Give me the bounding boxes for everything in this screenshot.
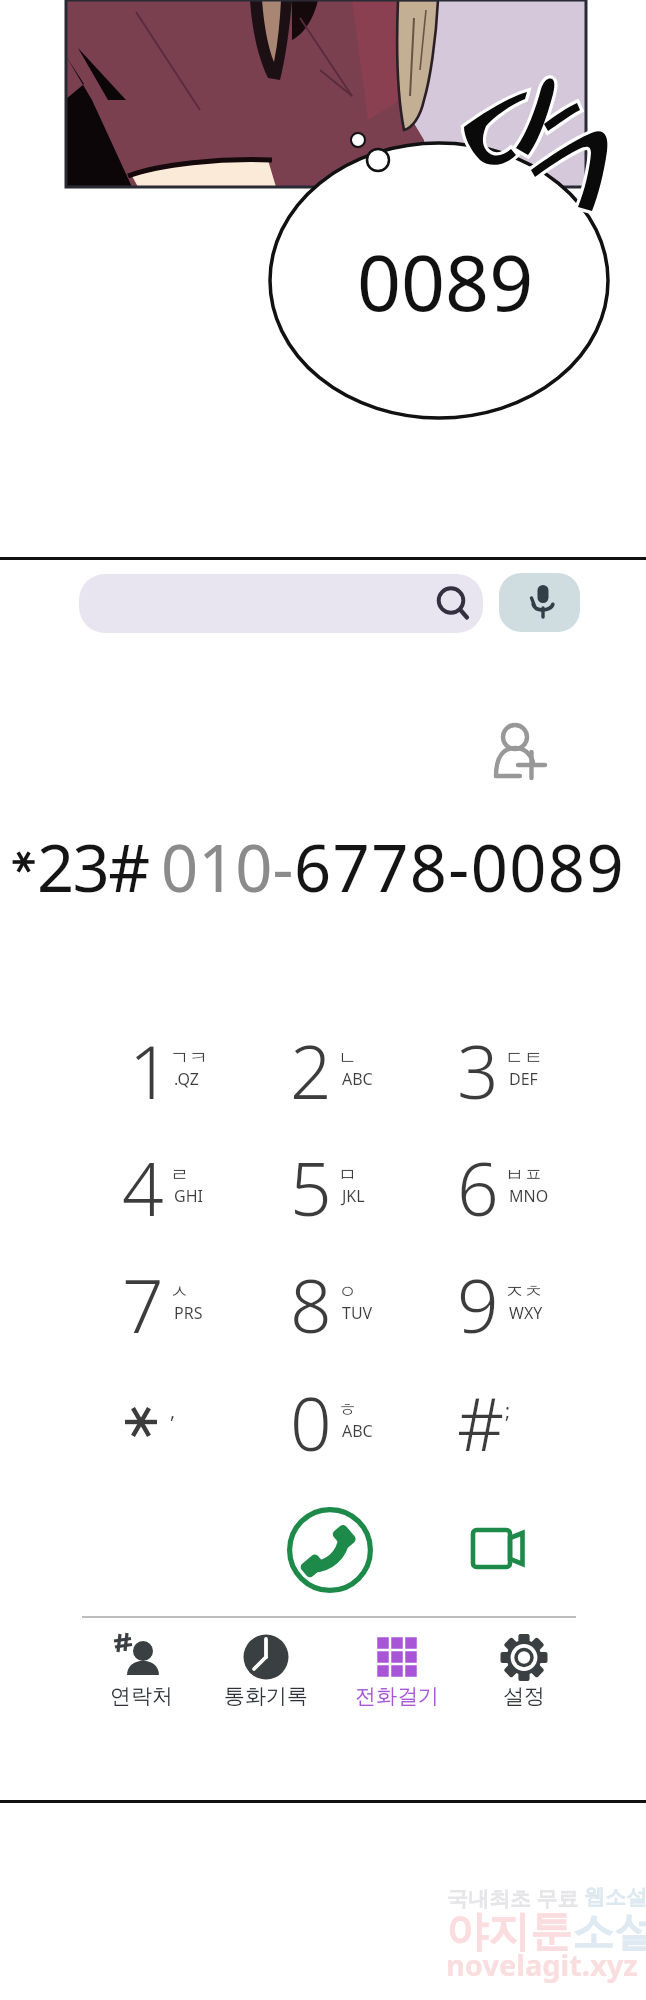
button[interactable]: 2 bbox=[272, 1027, 424, 1131]
button[interactable]: 전화걸기 bbox=[335, 1624, 459, 1720]
button[interactable]: 7 bbox=[104, 1261, 256, 1365]
staticText: 웹소설 bbox=[584, 1884, 646, 1910]
staticText: 연락처 bbox=[110, 1683, 173, 1709]
button[interactable] bbox=[79, 574, 483, 633]
staticText: ㅈㅊ bbox=[505, 1280, 543, 1304]
button[interactable]: 설정 bbox=[462, 1624, 586, 1720]
button[interactable]: 연락처 bbox=[79, 1624, 203, 1720]
button[interactable]: 6 bbox=[439, 1144, 591, 1248]
button[interactable]: 3 bbox=[439, 1027, 591, 1131]
staticText: DEF bbox=[509, 1068, 538, 1090]
staticText: .QZ bbox=[174, 1068, 199, 1090]
staticText: 23# bbox=[37, 823, 149, 912]
staticText: 통화기록 bbox=[224, 1683, 308, 1709]
staticText: MNO bbox=[509, 1185, 549, 1207]
staticText: 야지툰 bbox=[446, 1906, 572, 1959]
staticText: 0089 bbox=[357, 229, 534, 334]
staticText: ㄷㅌ bbox=[505, 1046, 543, 1070]
staticText: ; bbox=[505, 1398, 511, 1424]
staticText: 1 bbox=[129, 1021, 171, 1120]
button[interactable]: Call bbox=[287, 1507, 373, 1593]
button[interactable]: Video call bbox=[465, 1522, 533, 1590]
staticText: 3 bbox=[457, 1021, 499, 1120]
button[interactable]: 통화기록 bbox=[204, 1624, 328, 1720]
staticText: 4 bbox=[122, 1138, 164, 1237]
staticText: ㅅ bbox=[170, 1280, 189, 1304]
staticText: 8 bbox=[290, 1255, 332, 1354]
staticText: 소설 bbox=[572, 1906, 646, 1959]
staticText: 6 bbox=[457, 1138, 499, 1237]
button[interactable]: 0 bbox=[272, 1379, 424, 1483]
staticText: 설정 bbox=[503, 1683, 545, 1709]
button[interactable]: Search bbox=[431, 580, 475, 624]
button[interactable]: 9 bbox=[439, 1261, 591, 1365]
button[interactable]: # bbox=[439, 1379, 591, 1483]
staticText: 전화걸기 bbox=[355, 1683, 439, 1709]
button[interactable]: Add contact bbox=[488, 716, 550, 778]
button[interactable]: 8 bbox=[272, 1261, 424, 1365]
staticText: 2 bbox=[290, 1021, 332, 1120]
button[interactable]: 4 bbox=[104, 1144, 256, 1248]
staticText: ㄱㅋ bbox=[170, 1046, 208, 1070]
staticText: GHI bbox=[174, 1185, 203, 1207]
staticText: 010- bbox=[161, 823, 294, 912]
staticText: WXY bbox=[509, 1302, 543, 1324]
staticText: ABC bbox=[342, 1068, 373, 1090]
staticText: TUV bbox=[342, 1302, 373, 1324]
staticText: 5 bbox=[290, 1138, 332, 1237]
button[interactable]: , bbox=[104, 1379, 256, 1483]
staticText: novelagit.xyz bbox=[446, 1945, 638, 1984]
staticText: ㅇ bbox=[338, 1280, 357, 1304]
staticText: , bbox=[170, 1398, 176, 1424]
staticText: ABC bbox=[342, 1420, 373, 1442]
staticText: 0 bbox=[290, 1373, 332, 1472]
staticText: 7 bbox=[122, 1255, 164, 1354]
staticText: 9 bbox=[457, 1255, 499, 1354]
button[interactable]: 5 bbox=[272, 1144, 424, 1248]
staticText: 6778-0089 bbox=[294, 823, 625, 912]
button[interactable]: 1 bbox=[104, 1027, 256, 1131]
staticText: JKL bbox=[342, 1185, 365, 1207]
staticText: # bbox=[457, 1373, 505, 1472]
staticText: ㄴ bbox=[338, 1046, 357, 1070]
staticText: PRS bbox=[174, 1302, 203, 1324]
staticText: 국내최초 무료 bbox=[447, 1884, 584, 1913]
staticText: ㄹ bbox=[170, 1163, 189, 1187]
button[interactable]: Voice search bbox=[499, 573, 580, 632]
staticText: ㅎ bbox=[338, 1398, 357, 1422]
staticText: ㅂㅍ bbox=[505, 1163, 543, 1187]
staticText: ㅁ bbox=[338, 1163, 357, 1187]
